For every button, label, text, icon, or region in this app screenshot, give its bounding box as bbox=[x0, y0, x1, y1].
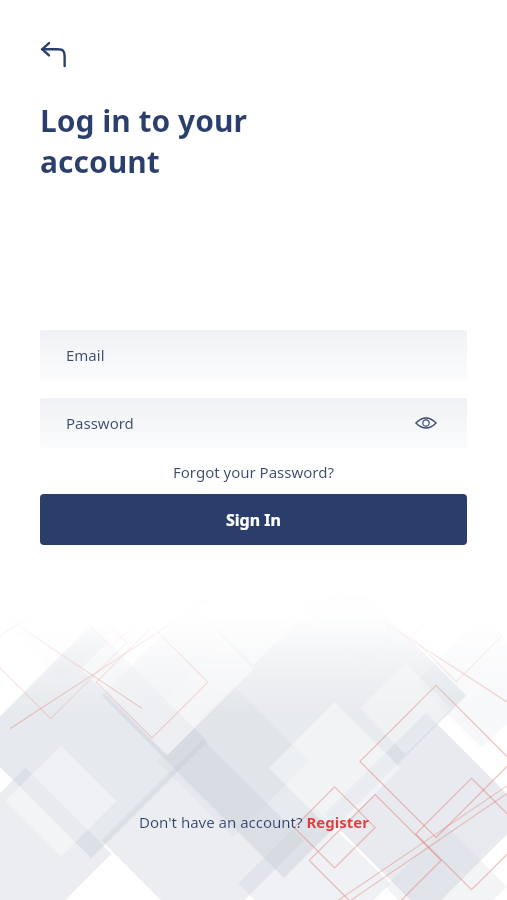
staticText: Email bbox=[66, 345, 105, 365]
button[interactable]: Show password bbox=[411, 408, 441, 438]
button[interactable]: Email bbox=[40, 330, 467, 380]
button[interactable]: Sign In bbox=[40, 494, 467, 545]
staticText: Password bbox=[66, 413, 134, 433]
staticText: Log in to your account bbox=[40, 100, 247, 182]
button[interactable]: Forgot your Password? bbox=[165, 460, 342, 484]
button[interactable]: Password bbox=[40, 398, 467, 448]
staticText: Don't have an account? Register bbox=[139, 812, 369, 832]
staticText: Forgot your Password? bbox=[173, 462, 334, 482]
button[interactable]: Don't have an account? Register bbox=[129, 808, 379, 836]
button[interactable]: Back bbox=[30, 30, 78, 78]
staticText: Sign In bbox=[226, 509, 281, 531]
